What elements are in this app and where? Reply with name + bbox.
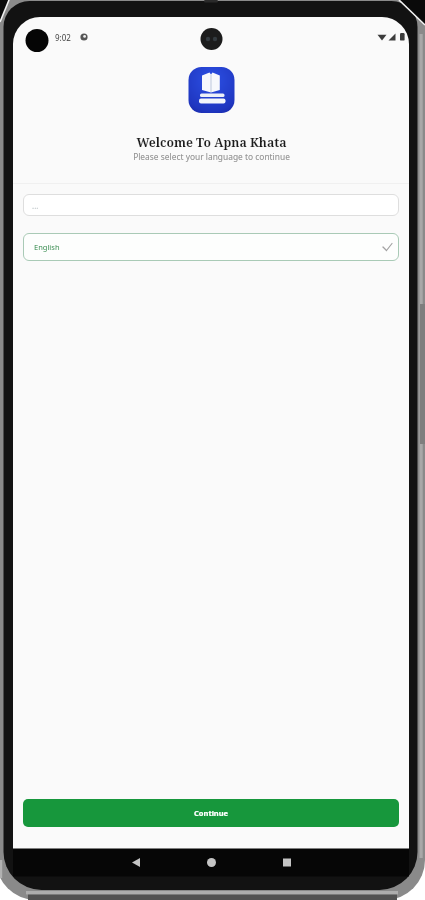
staticText: Welcome To Apna Khata [136,134,287,151]
staticText: 9:02 [55,32,71,43]
staticText: English [34,242,60,252]
button[interactable]: English [23,233,399,261]
staticText: ... [32,200,39,211]
staticText: Continue [194,808,229,818]
button[interactable]: Continue [23,799,399,827]
button[interactable]: ... [23,194,399,216]
staticText: Please select your language to continue [133,151,290,162]
